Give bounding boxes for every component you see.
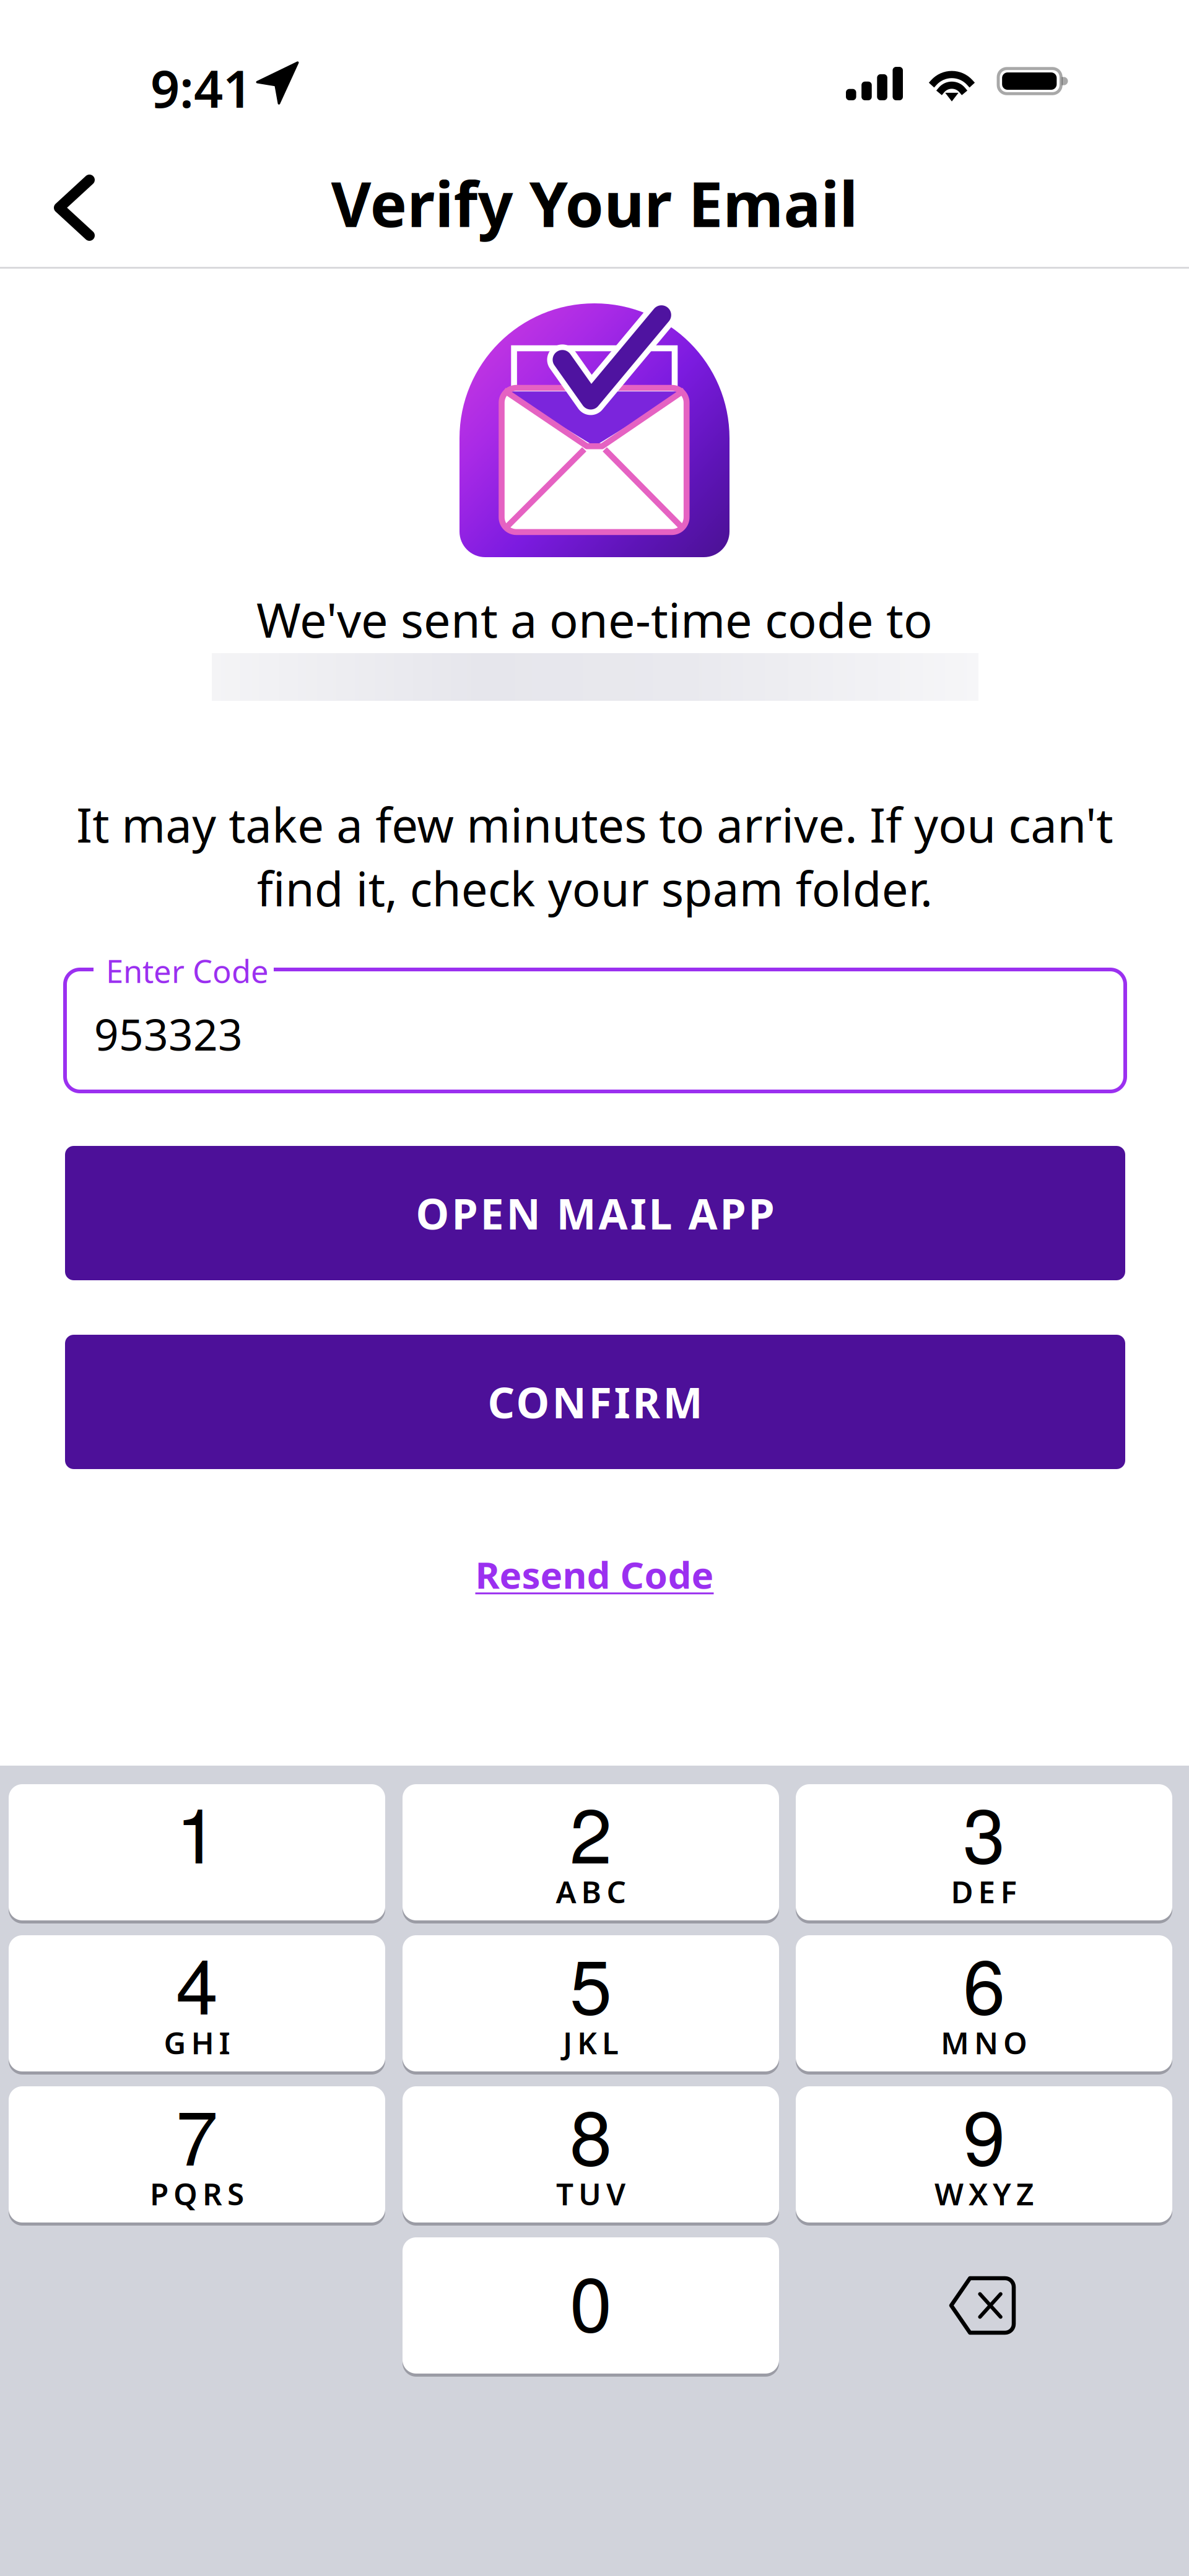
button[interactable]: OPEN MAIL APP (65, 1146, 1125, 1280)
staticText: It may take a few minutes to arrive. If … (76, 793, 1113, 919)
staticText: WXYZ (934, 2173, 1034, 2214)
button[interactable]: 2 (403, 1784, 779, 1923)
staticText: 3 (963, 1776, 1005, 1885)
button[interactable]: 0 (403, 2237, 779, 2377)
button[interactable]: 8 (403, 2086, 779, 2226)
staticText: TUV (556, 2173, 625, 2214)
button[interactable]: Back (37, 173, 136, 241)
staticText: OPEN MAIL APP (416, 1185, 774, 1241)
staticText: We've sent a one-time code to (256, 587, 933, 651)
staticText: Enter Code (106, 950, 269, 992)
button[interactable]: Resend Code (433, 1537, 756, 1611)
staticText: 2 (570, 1776, 612, 1885)
staticText: 1 (176, 1776, 218, 1885)
button[interactable]: 7 (9, 2086, 385, 2226)
staticText: 5 (570, 1927, 612, 2036)
staticText: 7 (176, 2078, 218, 2187)
button[interactable]: 5 (403, 1935, 779, 2075)
staticText: JKL (563, 2022, 619, 2063)
staticText: PQRS (150, 2173, 244, 2214)
button[interactable]: 6 (796, 1935, 1172, 2075)
staticText: 0 (570, 2245, 612, 2354)
button[interactable]: 1 (9, 1784, 385, 1923)
staticText: 9 (963, 2078, 1005, 2187)
staticText: 4 (176, 1927, 218, 2036)
staticText: MNO (941, 2022, 1027, 2063)
button[interactable]: 9 (796, 2086, 1172, 2226)
staticText: DEF (951, 1871, 1017, 1912)
staticText: 6 (963, 1927, 1005, 2036)
button[interactable]: 4 (9, 1935, 385, 2075)
staticText: 9:41 (150, 54, 252, 122)
staticText: Verify Your Email (331, 162, 858, 244)
staticText: Resend Code (475, 1550, 714, 1599)
button[interactable]: 3 (796, 1784, 1172, 1923)
staticText: 953323 (94, 1005, 243, 1062)
staticText: 8 (570, 2078, 612, 2187)
button[interactable]: Delete (796, 2237, 1172, 2374)
button[interactable]: CONFIRM (65, 1335, 1125, 1469)
staticText: GHI (164, 2022, 230, 2063)
staticText: CONFIRM (488, 1374, 703, 1430)
staticText: ABC (556, 1871, 626, 1912)
